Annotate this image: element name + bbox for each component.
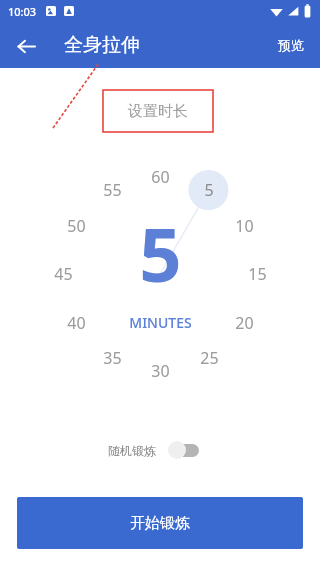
- staticText: MINUTES: [129, 313, 192, 332]
- staticText: 15: [248, 263, 267, 285]
- staticText: 5: [204, 179, 214, 201]
- staticText: 45: [54, 263, 73, 285]
- staticText: 25: [200, 347, 219, 369]
- button[interactable]: 随机锻炼: [108, 436, 200, 464]
- button[interactable]: Back: [8, 28, 44, 64]
- staticText: 20: [235, 312, 254, 334]
- button[interactable]: 10: [226, 215, 262, 237]
- button[interactable]: 50: [58, 215, 94, 237]
- staticText: 随机锻炼: [108, 443, 156, 458]
- button[interactable]: 55: [94, 179, 130, 201]
- staticText: 40: [67, 312, 86, 334]
- button[interactable]: 60: [142, 166, 178, 188]
- staticText: 35: [103, 347, 122, 369]
- button[interactable]: 20: [226, 312, 262, 334]
- staticText: 10: [235, 215, 254, 237]
- button[interactable]: 30: [142, 360, 178, 382]
- staticText: 60: [151, 166, 170, 188]
- staticText: 10:03: [8, 4, 37, 19]
- staticText: 55: [103, 179, 122, 201]
- staticText: 预览: [278, 37, 304, 53]
- button[interactable]: 5: [191, 179, 227, 201]
- button[interactable]: 开始锻炼: [17, 497, 303, 549]
- button[interactable]: 预览: [266, 30, 316, 60]
- staticText: 50: [67, 215, 86, 237]
- staticText: 30: [151, 360, 170, 382]
- button[interactable]: 35: [94, 347, 130, 369]
- staticText: 开始锻炼: [130, 514, 190, 533]
- staticText: 全身拉伸: [64, 33, 140, 57]
- button[interactable]: 25: [191, 347, 227, 369]
- staticText: 5: [139, 203, 182, 304]
- button[interactable]: 40: [58, 312, 94, 334]
- button[interactable]: 45: [45, 263, 81, 285]
- staticText: 设置时长: [128, 102, 188, 121]
- button[interactable]: 15: [239, 263, 275, 285]
